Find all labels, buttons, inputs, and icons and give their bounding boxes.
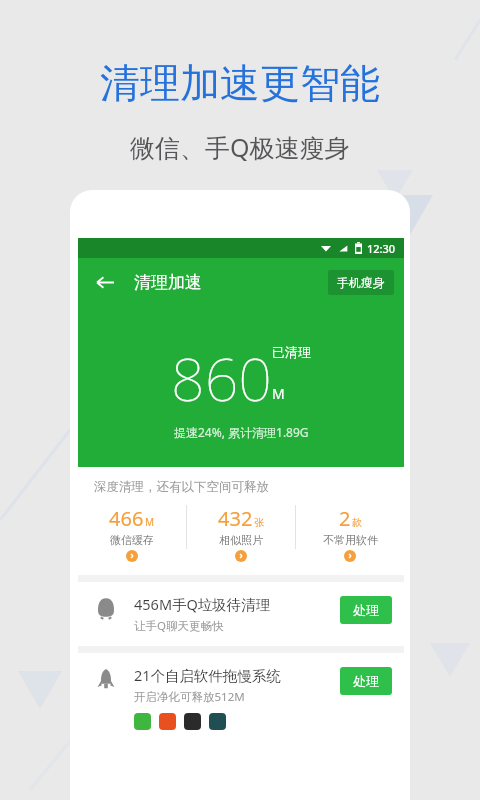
staticText: 微信、手Q极速瘦身 (130, 130, 350, 164)
staticText: 相似照片 (219, 533, 263, 547)
staticText: 提速24%, 累计清理1.89G (174, 424, 309, 440)
staticText: 处理 (353, 673, 379, 689)
button[interactable]: 456M手Q垃圾待清理 (78, 582, 404, 646)
staticText: 清理加速更智能 (100, 58, 380, 108)
staticText: 456M手Q垃圾待清理 (134, 594, 271, 614)
button[interactable]: 手机瘦身 (328, 270, 394, 295)
staticText: 860 (171, 338, 272, 418)
staticText: 不常用软件 (323, 533, 378, 547)
staticText: 开启净化可释放512M (134, 689, 245, 705)
staticText: 让手Q聊天更畅快 (134, 618, 224, 634)
staticText: 处理 (353, 602, 379, 618)
staticText: 已清理 (272, 344, 311, 360)
staticText: 款 (352, 516, 362, 529)
staticText: 466 (109, 505, 144, 532)
button[interactable]: 2 (296, 505, 404, 567)
staticText: 手机瘦身 (337, 275, 385, 290)
staticText: 2 (339, 505, 351, 532)
button[interactable]: 处理 (340, 667, 392, 695)
staticText: 微信缓存 (110, 533, 154, 547)
button[interactable]: 处理 (340, 596, 392, 624)
staticText: 深度清理，还有以下空间可释放 (94, 479, 269, 495)
staticText: M (272, 384, 285, 403)
staticText: M (145, 515, 155, 529)
staticText: 12:30 (367, 241, 396, 256)
button[interactable]: Back (88, 265, 122, 299)
staticText: 张 (254, 516, 264, 529)
button[interactable]: 21个自启软件拖慢系统 (78, 653, 404, 742)
button[interactable]: 432 (187, 505, 295, 567)
staticText: 21个自启软件拖慢系统 (134, 665, 282, 685)
staticText: 432 (218, 505, 253, 532)
button[interactable]: 466 (78, 505, 186, 567)
staticText: 清理加速 (134, 272, 202, 293)
